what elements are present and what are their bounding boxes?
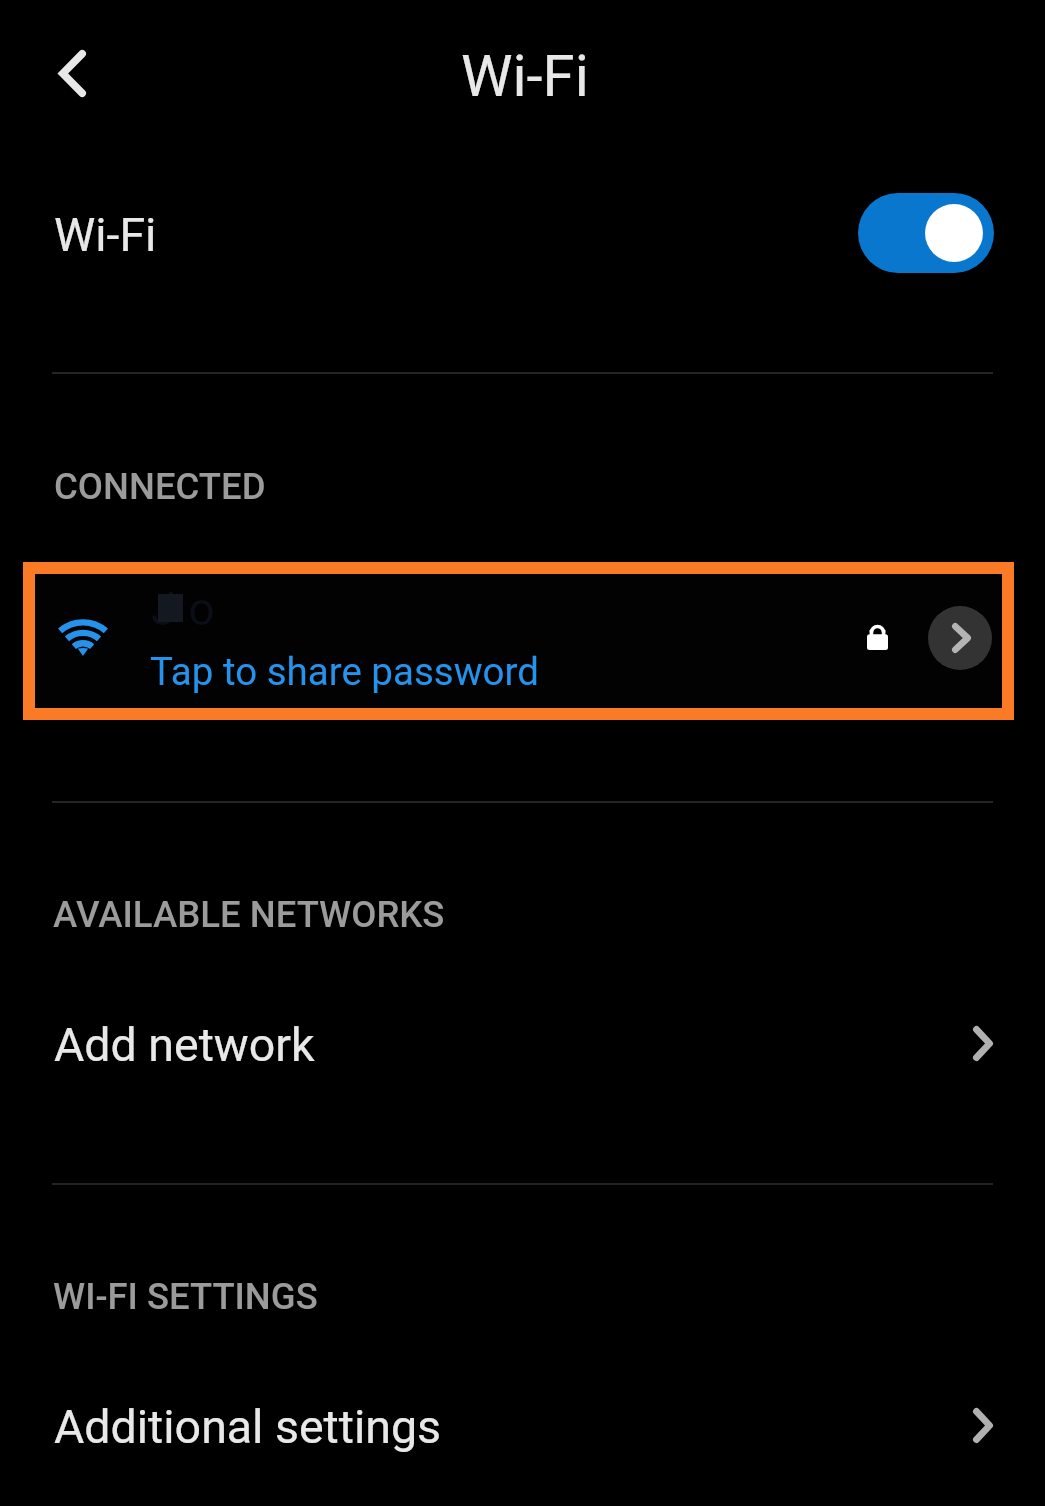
button[interactable]: Navigate back <box>27 28 117 118</box>
other: Secured network <box>867 625 888 650</box>
staticText: Tap to share password <box>150 649 539 694</box>
staticText: J o <box>151 582 215 636</box>
button[interactable]: Network details <box>928 606 992 670</box>
staticText: Additional settings <box>54 1400 442 1454</box>
button[interactable]: J o <box>35 574 1002 708</box>
staticText: AVAILABLE NETWORKS <box>53 893 445 936</box>
staticText: CONNECTED <box>54 465 266 508</box>
button[interactable]: Wi-Fi on <box>858 193 994 273</box>
staticText: Wi-Fi <box>461 42 589 110</box>
button[interactable]: Add network <box>0 983 1045 1107</box>
button[interactable]: Additional settings <box>0 1365 1045 1489</box>
staticText: Add network <box>54 1018 315 1072</box>
staticText: Wi-Fi <box>54 208 157 262</box>
button[interactable]: Wi-Fi <box>0 165 1045 305</box>
staticText: WI-FI SETTINGS <box>53 1275 318 1318</box>
